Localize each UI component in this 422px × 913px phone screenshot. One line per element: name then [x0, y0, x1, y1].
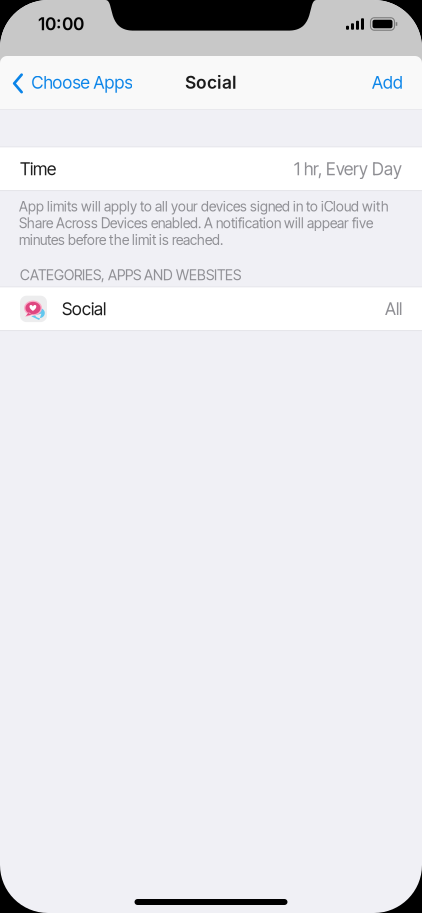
- staticText: 1 hr, Every Day: [294, 158, 402, 179]
- staticText: Add: [372, 72, 403, 93]
- staticText: Social: [62, 298, 106, 319]
- button[interactable]: Add: [358, 60, 422, 104]
- staticText: CATEGORIES, APPS AND WEBSITES: [20, 266, 241, 284]
- staticText: Time: [20, 158, 56, 179]
- button[interactable]: Choose Apps: [0, 60, 142, 104]
- staticText: Social: [185, 72, 237, 93]
- button[interactable]: Time: [0, 147, 422, 190]
- staticText: 10:00: [38, 13, 84, 34]
- staticText: App limits will apply to all your device…: [19, 198, 389, 248]
- staticText: Choose Apps: [31, 72, 132, 93]
- button[interactable]: Social: [0, 287, 422, 330]
- staticText: All: [385, 298, 402, 319]
